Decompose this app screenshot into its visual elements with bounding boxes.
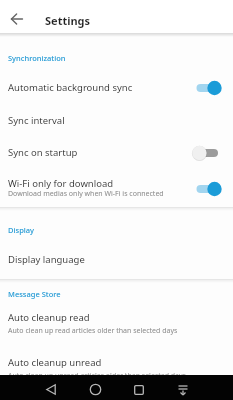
staticText: Download medias only when Wi-Fi is conne… <box>8 189 164 199</box>
staticText: Auto cleanup unread <box>8 356 102 369</box>
button[interactable]: Automatic background sync <box>0 73 233 102</box>
staticText: Settings <box>45 13 91 28</box>
button[interactable] <box>0 5 34 33</box>
staticText: Auto clean up unread articles older than… <box>8 371 186 381</box>
staticText: Message Store <box>8 289 61 299</box>
button[interactable] <box>29 379 73 400</box>
button[interactable]: Wi-Fi only for download <box>0 170 233 207</box>
button[interactable]: Auto cleanup read <box>0 305 233 342</box>
staticText: Automatic background sync <box>8 81 133 94</box>
staticText: Wi-Fi only for download <box>8 177 114 190</box>
button[interactable]: Auto cleanup unread <box>0 350 233 387</box>
staticText: Synchronization <box>8 53 66 63</box>
staticText: Sync interval <box>8 114 65 127</box>
button[interactable] <box>161 379 205 400</box>
button[interactable] <box>73 379 117 400</box>
button[interactable]: Sync on startup <box>0 138 233 167</box>
staticText: Auto cleanup read <box>8 311 90 324</box>
staticText: Display language <box>8 253 85 266</box>
staticText: Auto clean up read articles older than s… <box>8 326 178 336</box>
button[interactable]: Display language <box>0 244 233 274</box>
staticText: Display <box>8 225 35 235</box>
button[interactable]: Sync interval <box>0 106 233 135</box>
staticText: Sync on startup <box>8 146 78 159</box>
button[interactable] <box>117 379 161 400</box>
